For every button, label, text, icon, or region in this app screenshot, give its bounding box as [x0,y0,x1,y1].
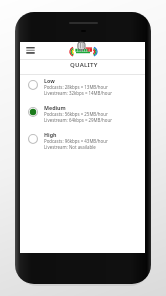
staticText: High [44,131,57,138]
staticText: Podcasts: 56kbps = 25MB/hour [44,111,108,117]
staticText: Podcasts: 28kbps = 13MB/hour [44,84,108,90]
staticText: QUALITY [70,60,98,68]
staticText: Medium [44,104,66,111]
staticText: Livestream: 64kbps = 29MB/hour [44,117,112,123]
staticText: Low [44,77,55,84]
button[interactable]: High [20,129,145,156]
staticText: Livestream: Not available [44,144,96,150]
button[interactable]: Low [20,75,145,102]
staticText: Podcasts: 96kbps = 43MB/hour [44,138,108,144]
staticText: Livestream: 32kbps = 14MB/hour [44,90,112,96]
button[interactable]: Medium [20,102,145,129]
button[interactable]: Open navigation menu [25,45,36,56]
